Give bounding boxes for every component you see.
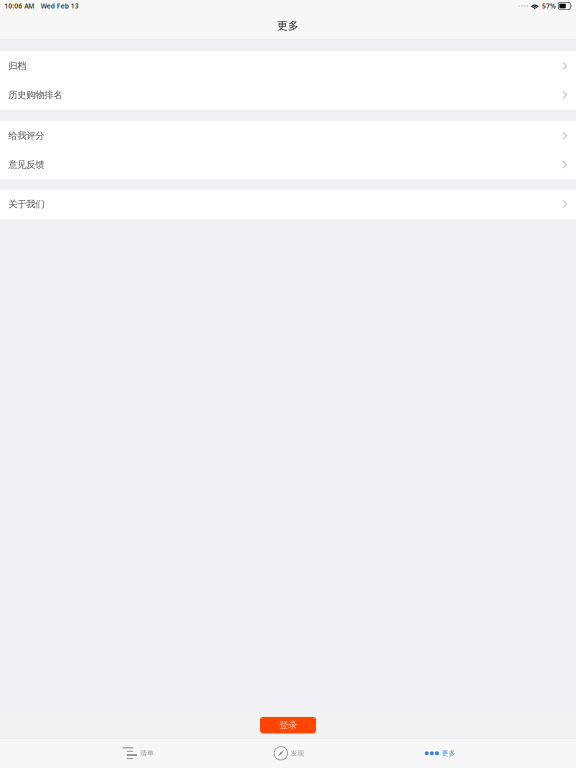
staticText: 历史购物排名 <box>8 89 62 101</box>
button[interactable]: 登录 <box>260 717 316 733</box>
button[interactable]: 关于我们 <box>0 190 576 219</box>
button[interactable]: 更多 <box>363 739 514 768</box>
button[interactable]: 发现 <box>212 739 363 768</box>
staticText: Wed Feb 13 <box>41 2 79 10</box>
staticText: 归档 <box>8 60 26 72</box>
button[interactable]: 归档 <box>0 51 576 80</box>
staticText: 更多 <box>442 749 456 757</box>
staticText: 意见反馈 <box>8 159 44 170</box>
staticText: 57% <box>542 2 556 10</box>
button[interactable]: 意见反馈 <box>0 150 576 179</box>
button[interactable]: 清单 <box>61 739 212 768</box>
staticText: 关于我们 <box>8 198 44 210</box>
button[interactable]: 历史购物排名 <box>0 80 576 109</box>
staticText: 发现 <box>290 749 304 757</box>
button[interactable]: 给我评分 <box>0 121 576 150</box>
staticText: 10:06 AM <box>4 2 34 10</box>
staticText: 给我评分 <box>8 130 44 141</box>
staticText: 更多 <box>277 19 299 32</box>
staticText: 登录 <box>279 719 297 731</box>
staticText: 清单 <box>140 749 154 757</box>
